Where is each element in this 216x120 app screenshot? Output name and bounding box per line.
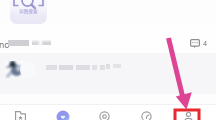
button[interactable]: Comments [190, 38, 208, 49]
staticText: 4 [203, 39, 208, 49]
button[interactable]: 识图搜索 [10, 0, 47, 24]
staticText: no [0, 39, 10, 51]
staticText: 识图搜索 [19, 9, 38, 15]
button[interactable]: Likes [41, 108, 83, 120]
button[interactable]: Profile [167, 108, 209, 120]
button[interactable]: Home [0, 108, 41, 120]
button[interactable]: Messages [125, 108, 167, 120]
button[interactable]: Discover [83, 108, 125, 120]
